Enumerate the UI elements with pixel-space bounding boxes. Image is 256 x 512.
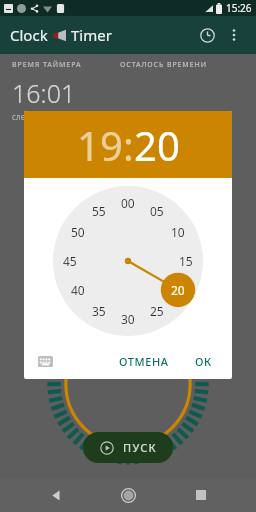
button[interactable]: 00 [53,186,203,336]
button[interactable]: Home [111,478,145,512]
staticText: Clock [10,25,48,45]
staticText: 55 [92,203,106,219]
staticText: Timer [71,25,112,45]
button[interactable]: Timer history [194,22,220,48]
staticText: ОТМЕНА [119,354,169,369]
staticText: 25 [150,303,164,319]
staticText: 15 [179,253,193,269]
staticText: 50 [71,224,85,240]
staticText: 10 [171,224,185,240]
staticText: 20 [171,282,185,298]
button[interactable]: ОК [187,349,220,374]
staticText: 19 [77,118,123,172]
staticText: 16:01 [12,76,76,110]
staticText: 05 [150,203,164,219]
staticText: 20 [134,118,180,172]
staticText: 40 [71,282,85,298]
button[interactable]: Switch to keyboard input [32,348,58,374]
button[interactable]: 19 [77,118,123,172]
staticText: слева [12,111,35,122]
button[interactable]: Recent apps [184,478,218,512]
staticText: ПУСК [123,440,157,455]
staticText: 45 [63,253,77,269]
staticText: 35 [92,303,106,319]
button[interactable]: ОТМЕНА [111,349,177,374]
staticText: 15:26 [226,1,252,15]
button[interactable]: More options [222,23,246,47]
button[interactable]: ПУСК [83,432,173,463]
button[interactable]: Back [39,478,73,512]
staticText: 30 [121,311,135,327]
staticText: : [123,118,134,172]
staticText: ОК [195,354,212,369]
button[interactable]: 20 [134,118,180,172]
staticText: ВРЕМЯ ТАЙМЕРА [12,60,82,70]
staticText: ОСТАЛОСЬ ВРЕМЕНИ [120,60,207,70]
staticText: 00 [121,195,135,211]
